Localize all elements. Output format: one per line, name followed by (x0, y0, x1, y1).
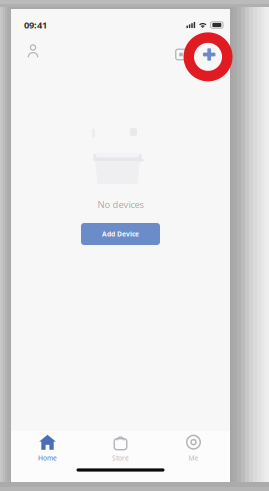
button[interactable]: Add Device (81, 223, 160, 245)
staticText: Store (112, 453, 129, 462)
button[interactable]: Home (11, 433, 84, 463)
button[interactable]: Me (157, 433, 230, 463)
staticText: Me (188, 453, 198, 462)
button[interactable]: Store (84, 433, 157, 463)
staticText: 09:41 (24, 19, 47, 31)
button[interactable]: Account (18, 37, 48, 65)
staticText: No devices (97, 198, 143, 211)
staticText: Add Device (102, 230, 139, 238)
button[interactable]: Add device (195, 40, 223, 68)
button[interactable]: Scan (168, 40, 194, 68)
staticText: Home (38, 453, 57, 462)
